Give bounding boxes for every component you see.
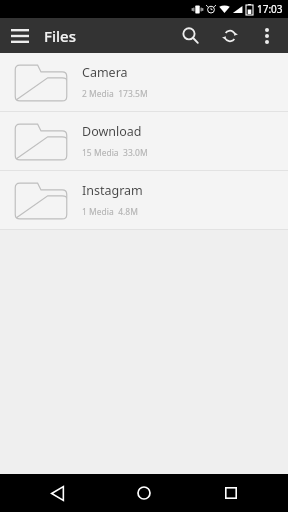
button[interactable]: Download (0, 112, 288, 170)
button[interactable]: Camera (0, 53, 288, 111)
staticText: Files (44, 26, 76, 46)
staticText: Camera (82, 64, 128, 81)
staticText: 15 Media 33.0M (82, 147, 148, 159)
button[interactable]: Home (114, 474, 174, 512)
button[interactable]: Instagram (0, 171, 288, 229)
button[interactable]: Recent apps (201, 474, 261, 512)
staticText: Instagram (82, 182, 143, 199)
button[interactable]: Back (27, 474, 87, 512)
staticText: 2 Media 173.5M (82, 88, 148, 100)
button[interactable]: Open navigation drawer (0, 18, 40, 53)
staticText: 1 Media 4.8M (82, 206, 138, 218)
button[interactable]: Search (170, 18, 210, 53)
button[interactable]: Refresh (210, 18, 250, 53)
staticText: 17:03 (257, 2, 283, 16)
button[interactable]: More options (250, 19, 284, 53)
staticText: Download (82, 123, 142, 140)
